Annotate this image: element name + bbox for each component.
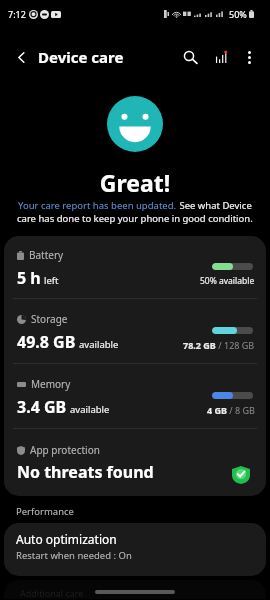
button[interactable]: Memory xyxy=(4,364,266,428)
staticText: Battery xyxy=(29,248,64,262)
staticText: Great! xyxy=(0,167,270,198)
staticText: Auto optimization xyxy=(16,531,117,547)
staticText: 7:12 xyxy=(8,8,26,20)
staticText: available xyxy=(79,338,119,351)
button[interactable]: More options xyxy=(238,46,260,68)
button[interactable]: App protection xyxy=(4,429,266,496)
button[interactable]: Navigate up xyxy=(9,45,33,69)
staticText: available xyxy=(70,403,110,416)
staticText: Performance xyxy=(16,505,74,518)
button[interactable]: Battery xyxy=(4,236,266,298)
staticText: 49.8 GB xyxy=(17,331,76,353)
staticText: 50% available xyxy=(200,275,255,287)
staticText: 5 h xyxy=(17,267,41,289)
staticText: Additional care xyxy=(20,587,84,599)
staticText: / 128 GB xyxy=(216,339,255,351)
staticText: Restart when needed : On xyxy=(16,549,132,562)
staticText: Storage xyxy=(31,312,68,326)
staticText: 3.4 GB xyxy=(17,396,67,418)
staticText: Device care xyxy=(38,47,124,67)
button[interactable]: Additional care xyxy=(4,580,266,599)
staticText: left xyxy=(44,274,59,287)
staticText: Your care report has been updated. xyxy=(18,199,177,212)
button[interactable]: Usage history xyxy=(208,44,234,70)
staticText: See what Device xyxy=(177,199,252,212)
button[interactable]: Search xyxy=(177,44,203,70)
staticText: App protection xyxy=(30,443,100,457)
staticText: 50% xyxy=(229,8,247,20)
staticText: / 8 GB xyxy=(227,404,255,416)
button[interactable]: Auto optimization xyxy=(4,523,266,576)
staticText: 4 GB xyxy=(207,404,227,416)
button[interactable]: Storage xyxy=(4,299,266,363)
staticText: Memory xyxy=(31,377,71,391)
staticText: 78.2 GB xyxy=(183,339,216,351)
staticText: No threats found xyxy=(17,461,154,483)
staticText: care has done to keep your phone in good… xyxy=(17,212,253,225)
